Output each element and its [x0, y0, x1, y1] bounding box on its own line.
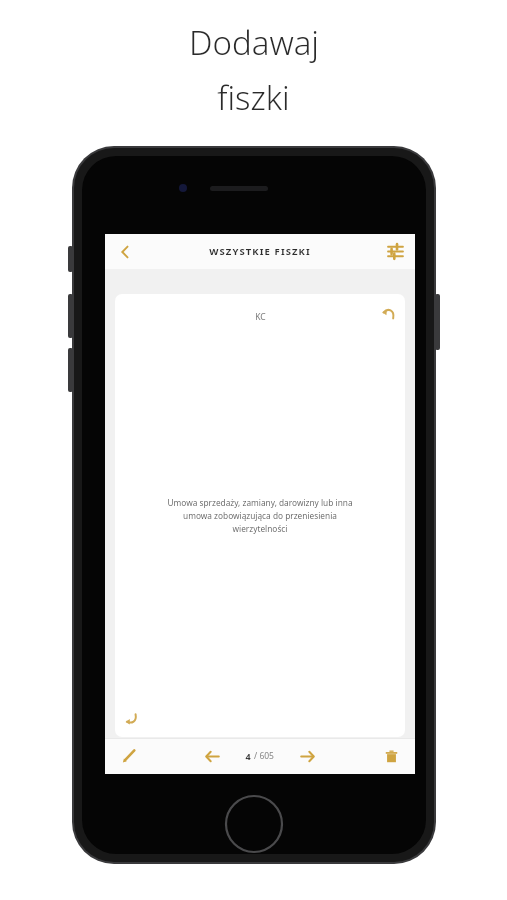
button[interactable]: Undo — [375, 300, 401, 326]
button[interactable]: 4 — [245, 750, 274, 762]
staticText: WSZYSTKIE FISZKI — [209, 245, 311, 258]
button[interactable]: Next card — [290, 738, 324, 774]
staticText: / 605 — [254, 750, 274, 762]
button[interactable]: Return — [119, 707, 143, 731]
button[interactable]: Edit — [113, 738, 145, 774]
staticText: fiszki — [217, 75, 290, 120]
button[interactable]: KC — [115, 294, 405, 737]
button[interactable]: Delete — [375, 738, 407, 774]
button[interactable]: Filter — [375, 234, 415, 269]
staticText: KC — [255, 311, 266, 323]
staticText: Umowa sprzedaży, zamiany, darowizny lub … — [133, 497, 387, 535]
button[interactable]: Previous card — [195, 738, 229, 774]
staticText: 4 — [245, 750, 251, 762]
staticText: Dodawaj — [189, 20, 319, 65]
button[interactable]: Back — [105, 234, 145, 269]
